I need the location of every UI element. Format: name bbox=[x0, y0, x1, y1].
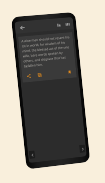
button[interactable]: Previous bbox=[29, 150, 35, 159]
button[interactable]: Share bbox=[25, 72, 33, 80]
staticText: A wise man should not resent his lot in … bbox=[21, 35, 73, 68]
button[interactable]: Back bbox=[18, 23, 26, 32]
button[interactable]: A wise man should not resent his lot in … bbox=[18, 32, 77, 83]
button[interactable]: Next bbox=[79, 144, 85, 153]
button[interactable]: More options bbox=[63, 20, 71, 28]
button[interactable]: Copy bbox=[35, 71, 44, 79]
button[interactable]: Font size bbox=[55, 21, 62, 28]
button[interactable]: Bookmark bbox=[65, 68, 74, 76]
